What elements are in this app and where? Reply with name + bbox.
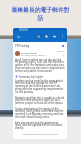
staticText: Lyndon Rosen (21, 51, 38, 54)
staticText: Rachel noted that she is unable to atten… (15, 96, 65, 105)
staticText: Alex also mentioned the attachment issue… (15, 121, 65, 130)
staticText: Summary by Copilot (19, 75, 44, 78)
button[interactable]: More options (58, 31, 66, 42)
staticText: AI-generated content may be incorrect (15, 133, 65, 136)
staticText: To: Lopez, Carlos; Smith, R... (21, 54, 48, 57)
staticText: 最棒最長的電子郵件對話 (10, 6, 71, 22)
staticText: 5:42 PM (57, 50, 65, 53)
button[interactable]: Mark as unread (50, 31, 58, 42)
button[interactable]: Back (15, 31, 23, 42)
staticText: Carlos asked about the timing of the mee… (15, 107, 65, 119)
staticText: Hi all, here is where we can discuss the… (15, 58, 65, 73)
button[interactable]: Copilot (34, 31, 42, 42)
staticText: PR Posting (15, 44, 30, 48)
button[interactable]: Delete (42, 31, 50, 42)
staticText: Lyndon sent an email to the team about t… (15, 79, 65, 94)
